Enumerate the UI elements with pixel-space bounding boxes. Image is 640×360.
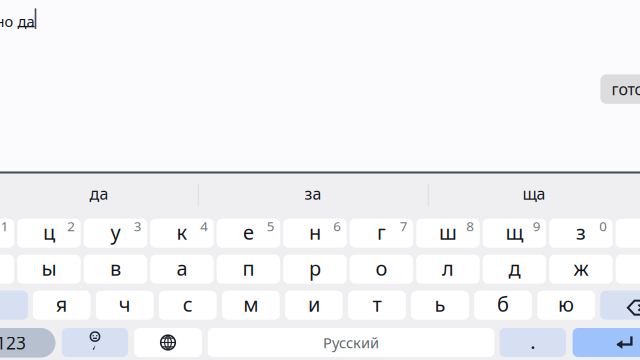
staticText: 5 [267,217,275,235]
button[interactable]: Shift [0,291,28,320]
staticText: Русский [323,333,379,352]
button[interactable]: ш [416,219,480,248]
staticText: к [176,219,187,245]
staticText: готово [611,78,640,100]
staticText: 4 [200,217,208,235]
staticText: 6 [333,217,341,235]
button[interactable]: Emoji [62,328,128,357]
button[interactable]: ж [549,255,613,284]
staticText: да [89,183,108,204]
staticText: я [56,291,68,317]
staticText: л [442,255,454,281]
button[interactable]: й [0,219,14,248]
button[interactable]: Русский [208,328,494,357]
button[interactable]: я [33,291,91,320]
button[interactable]: л [416,255,480,284]
staticText: 2 [67,217,75,235]
button[interactable]: о [350,255,413,284]
staticText: 0 [599,217,607,235]
staticText: за [304,183,321,204]
button[interactable]: за [198,175,428,212]
staticText: в [110,255,121,281]
button[interactable]: т [348,291,406,320]
staticText: е [243,219,254,245]
button[interactable]: ща [428,175,640,212]
button[interactable]: и [285,291,343,320]
button[interactable]: к [150,219,214,248]
staticText: а [176,255,187,281]
staticText: 123 [0,331,26,354]
button[interactable]: готово [600,74,640,104]
button[interactable]: н [283,219,347,248]
button[interactable]: е [217,219,280,248]
button[interactable]: . [499,328,566,357]
staticText: у [110,219,120,245]
button[interactable]: ю [537,291,595,320]
button[interactable]: а [150,255,214,284]
button[interactable]: Delete [600,291,640,320]
button[interactable]: д [483,255,546,284]
staticText: ш [439,219,457,245]
staticText: о [375,255,387,281]
button[interactable]: Next keyboard [134,328,202,357]
button[interactable]: ь [411,291,469,320]
staticText: с [183,291,193,317]
staticText: ч [119,291,131,317]
staticText: 3 [134,217,142,235]
staticText: д [508,255,520,281]
button[interactable]: да [0,175,198,212]
staticText: р [309,255,321,281]
staticText: ща [522,183,545,204]
staticText: . [530,328,535,355]
staticText: т [372,291,381,317]
button[interactable]: г [350,219,413,248]
staticText: 8 [466,217,474,235]
button[interactable]: з [549,219,613,248]
staticText: н [309,219,321,245]
button[interactable]: в [84,255,147,284]
staticText: ж [573,255,588,281]
staticText: и [308,291,320,317]
staticText: 7 [400,217,408,235]
staticText: ц [43,219,55,245]
button[interactable]: с [159,291,217,320]
staticText: м [243,291,258,317]
button[interactable]: ц [17,219,81,248]
staticText: б [497,291,509,317]
staticText: 1 [1,217,9,235]
staticText: п [242,255,254,281]
button[interactable]: ч [96,291,154,320]
staticText: г [377,219,386,245]
button[interactable]: ы [17,255,81,284]
staticText: ы [41,255,56,281]
button[interactable]: Return [573,328,640,357]
button[interactable]: м [222,291,280,320]
button[interactable]: п [217,255,280,284]
staticText: ь [434,291,445,317]
staticText: щ [505,219,523,245]
staticText: з [576,219,586,245]
button[interactable]: б [474,291,532,320]
staticText: ю [558,291,574,317]
button[interactable]: Numbers [0,328,55,358]
staticText: 9 [533,217,541,235]
button[interactable]: р [283,255,347,284]
button[interactable]: щ [483,219,546,248]
button[interactable]: у [84,219,147,248]
staticText: но да [0,11,34,31]
